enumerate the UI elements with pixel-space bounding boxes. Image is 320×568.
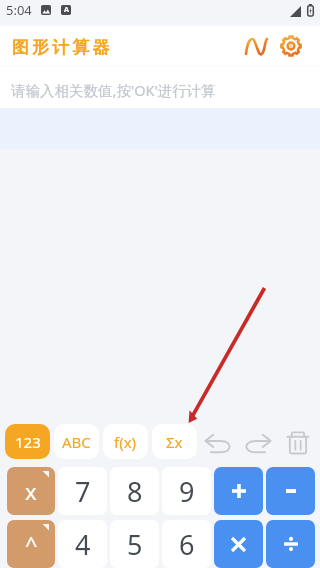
staticText: 7 [75,473,91,510]
button[interactable]: Σx [152,424,197,459]
staticText: 5:04 [6,1,32,19]
button[interactable] [266,520,315,568]
button[interactable]: 7 [58,467,107,515]
button[interactable]: Settings [275,30,307,62]
button[interactable]: Redo [240,424,276,459]
staticText: ^ [25,529,38,559]
button[interactable]: Undo [200,424,236,459]
button[interactable]: 123 [5,424,50,459]
staticText: 123 [15,432,41,452]
button[interactable]: Graph [240,30,272,62]
button[interactable]: 6 [162,520,211,568]
staticText: 8 [127,473,143,510]
button[interactable]: f(x) [103,424,148,459]
staticText: x [25,476,37,506]
button[interactable] [214,467,263,515]
staticText: 6 [179,526,195,563]
button[interactable]: 9 [162,467,211,515]
staticText: 图形计算器 [12,37,113,58]
staticText: ABC [62,432,91,452]
staticText: 请输入相关数值,按'OK'进行计算 [11,80,216,100]
button[interactable]: 8 [110,467,159,515]
staticText: f(x) [114,432,137,452]
button[interactable] [214,520,263,568]
staticText: 4 [75,526,91,563]
staticText: 5 [127,526,143,563]
button[interactable]: 4 [58,520,107,568]
staticText: A [64,5,69,15]
button[interactable] [266,467,315,515]
staticText: 9 [179,473,195,510]
button[interactable]: Delete [280,424,316,459]
button[interactable]: ^ [7,520,55,568]
button[interactable]: 5 [110,520,159,568]
button[interactable]: ABC [54,424,99,459]
staticText: Σx [166,432,183,452]
button[interactable]: x [7,467,55,515]
